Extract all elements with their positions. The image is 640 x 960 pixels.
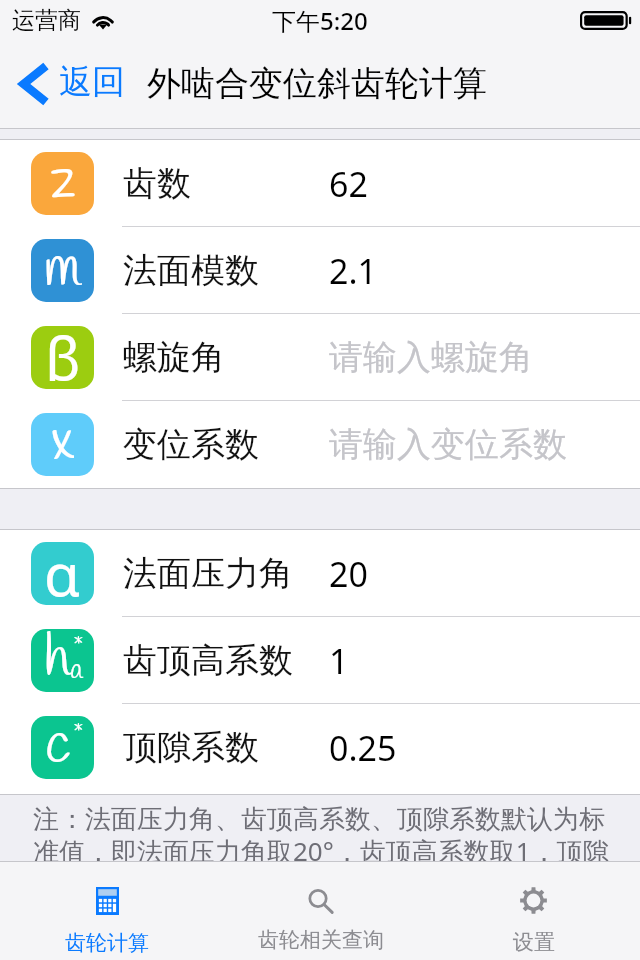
staticText: 注：法面压力角、齿顶高系数、顶隙系数默认为标准值，即法面压力角取20°，齿顶高系… [33,803,610,861]
button[interactable]: 设置 [427,862,640,960]
staticText: 20 [329,551,368,597]
staticText: 1 [329,638,349,684]
button[interactable]: m [0,227,640,314]
other: 齿轮相关查询 [308,889,334,914]
staticText: 变位系数 [123,423,329,466]
staticText: β [45,326,81,381]
staticText: 返回 [59,61,125,103]
staticText: a [70,652,83,689]
button[interactable]: α [0,530,640,617]
other: 齿轮计算 [96,887,119,915]
staticText: 请输入变位系数 [329,423,567,466]
staticText: 齿轮计算 [65,930,149,956]
staticText: * [73,632,84,664]
button[interactable]: x [0,401,640,488]
button[interactable]: β [0,314,640,401]
button[interactable]: 齿轮相关查询 [214,862,427,960]
staticText: z [50,152,76,207]
staticText: 2.1 [329,248,378,294]
staticText: 下午5:20 [272,4,368,37]
staticText: 62 [329,161,368,207]
staticText: * [73,719,84,751]
staticText: 法面压力角 [123,552,329,595]
staticText: α [44,542,81,597]
staticText: 0.25 [329,725,397,771]
staticText: h [43,629,72,684]
staticText: 设置 [513,929,555,955]
staticText: 请输入螺旋角 [329,336,533,379]
button[interactable]: h [0,617,640,704]
staticText: m [43,239,82,294]
staticText: 螺旋角 [123,336,329,379]
staticText: 齿数 [123,162,329,205]
staticText: 运营商 [12,6,81,35]
staticText: 齿轮相关查询 [258,927,384,953]
staticText: 顶隙系数 [123,726,329,769]
button[interactable]: c [0,704,640,791]
staticText: c [45,716,71,771]
staticText: 外啮合变位斜齿轮计算 [147,62,487,105]
staticText: 法面模数 [123,249,329,292]
other: 设置 [520,887,547,914]
button[interactable]: 齿轮计算 [0,862,214,960]
button[interactable]: 返回 [0,40,131,128]
staticText: 齿顶高系数 [123,639,329,682]
staticText: x [51,413,74,468]
button[interactable]: z [0,140,640,227]
